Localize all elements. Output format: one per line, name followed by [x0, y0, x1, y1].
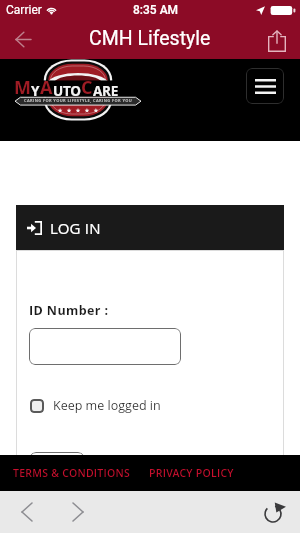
- button[interactable]: [29, 328, 181, 365]
- button[interactable]: Reload: [248, 491, 300, 533]
- button[interactable]: Forward: [54, 491, 102, 533]
- staticText: Login: [42, 459, 72, 475]
- button[interactable]: Keep me logged in: [30, 397, 161, 414]
- staticText: LOG IN: [50, 218, 101, 238]
- staticText: ID Number :: [29, 302, 109, 319]
- staticText: 8:35 AM: [133, 3, 179, 17]
- staticText: ARE: [93, 82, 118, 100]
- button[interactable]: Back: [0, 491, 54, 533]
- staticText: A: [40, 75, 53, 100]
- staticText: Keep me logged in: [53, 397, 161, 414]
- button[interactable]: Menu: [246, 68, 284, 104]
- button[interactable]: Login: [29, 452, 85, 482]
- button[interactable]: PRIVACY POLICY: [149, 466, 234, 480]
- staticText: CARING FOR YOUR LIFESTYLE, CARING FOR YO…: [24, 98, 133, 103]
- button[interactable]: TERMS & CONDITIONS: [13, 466, 130, 480]
- button[interactable]: Back: [0, 20, 48, 59]
- staticText: CMH Lifestyle: [89, 27, 211, 50]
- staticText: C: [81, 75, 93, 100]
- staticText: M: [14, 75, 31, 100]
- staticText: UTO: [53, 82, 81, 100]
- staticText: Carrier: [6, 3, 42, 17]
- staticText: Y: [31, 82, 40, 100]
- button[interactable]: Share: [254, 20, 300, 59]
